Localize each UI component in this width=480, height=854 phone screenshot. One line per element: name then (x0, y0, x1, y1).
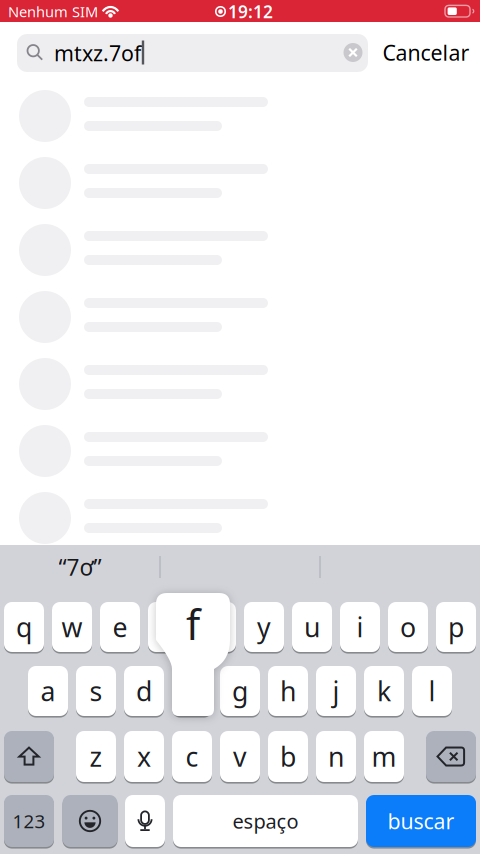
staticText: y (257, 609, 271, 645)
staticText: s (89, 673, 102, 709)
staticText: d (136, 673, 152, 709)
staticText: 19:12 (228, 0, 273, 23)
staticText: espaço (232, 808, 298, 834)
button[interactable]: espaço (173, 794, 358, 848)
button[interactable]: p (436, 601, 476, 653)
staticText: b (280, 739, 296, 774)
staticText: l (428, 673, 435, 709)
button[interactable]: o (388, 601, 428, 653)
button[interactable]: r (148, 601, 188, 653)
staticText: e (112, 609, 127, 645)
staticText: z (89, 739, 102, 774)
button[interactable]: t (196, 601, 236, 653)
staticText: q (16, 609, 32, 645)
staticText: mtxz.7of (54, 39, 141, 67)
staticText: m (371, 739, 396, 774)
staticText: x (137, 739, 151, 774)
button[interactable]: Cancelar (382, 38, 469, 67)
button[interactable]: Apagar (426, 730, 476, 783)
staticText: u (304, 609, 320, 645)
button[interactable]: y (244, 601, 284, 653)
button[interactable]: f (172, 665, 212, 717)
button[interactable]: m (364, 730, 404, 783)
button[interactable]: z (76, 730, 116, 783)
staticText: c (185, 739, 198, 774)
staticText: Nenhum SIM (8, 2, 98, 21)
button[interactable]: n (316, 730, 356, 783)
staticText: i (356, 609, 363, 645)
button[interactable]: buscar (366, 794, 476, 848)
staticText: p (448, 609, 464, 645)
staticText: h (280, 673, 296, 709)
staticText: “7ơ” (58, 552, 101, 582)
button[interactable]: k (364, 665, 404, 717)
button[interactable]: b (268, 730, 308, 783)
staticText: f (186, 597, 200, 651)
button[interactable]: g (220, 665, 260, 717)
button[interactable]: Shift (4, 730, 54, 783)
button[interactable]: mtxz.7of (17, 34, 368, 72)
button[interactable]: l (412, 665, 452, 717)
button[interactable]: q (4, 601, 44, 653)
staticText: o (400, 609, 416, 645)
button[interactable]: 123 (4, 794, 54, 848)
button[interactable]: d (124, 665, 164, 717)
staticText: n (328, 739, 344, 774)
button[interactable]: x (124, 730, 164, 783)
button[interactable]: s (76, 665, 116, 717)
button[interactable]: a (28, 665, 68, 717)
button[interactable]: Emoji (62, 794, 117, 848)
button[interactable]: e (100, 601, 140, 653)
button[interactable]: v (220, 730, 260, 783)
button[interactable]: i (340, 601, 380, 653)
button[interactable]: “7ơ” (0, 545, 160, 589)
staticText: w (61, 609, 82, 645)
button[interactable]: Ditado (125, 794, 165, 848)
staticText: v (233, 739, 247, 774)
staticText: g (232, 673, 248, 709)
button[interactable]: w (52, 601, 92, 653)
staticText: k (377, 673, 391, 709)
staticText: j (332, 673, 339, 709)
button[interactable]: j (316, 665, 356, 717)
staticText: Cancelar (382, 38, 469, 67)
staticText: a (40, 673, 55, 709)
staticText: 123 (12, 809, 45, 833)
button[interactable]: Limpar texto (341, 40, 365, 64)
button[interactable]: h (268, 665, 308, 717)
button[interactable]: c (172, 730, 212, 783)
staticText: buscar (387, 807, 454, 835)
button[interactable]: u (292, 601, 332, 653)
